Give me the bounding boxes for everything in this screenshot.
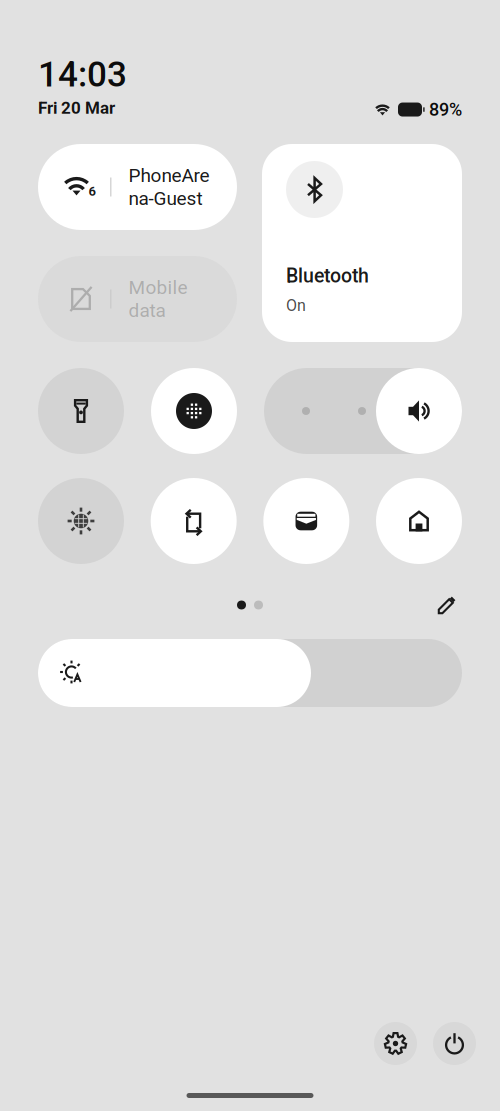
staticText: 89% <box>429 99 462 120</box>
staticText: 6 <box>88 184 95 199</box>
staticText: na-Guest <box>128 187 202 210</box>
button[interactable]: Eye comfort shield <box>38 478 124 564</box>
staticText: Bluetooth <box>286 264 369 287</box>
button[interactable]: Bluetooth <box>262 144 462 342</box>
button[interactable]: Mobile <box>38 256 237 342</box>
button[interactable]: Settings <box>374 1022 417 1065</box>
button[interactable]: 6 <box>38 144 237 230</box>
button[interactable]: Flashlight <box>38 368 124 454</box>
staticText: Fri 20 Mar <box>38 98 115 118</box>
button[interactable]: Sound mode <box>151 368 237 454</box>
button[interactable]: Brightness <box>38 639 462 707</box>
button[interactable]: Edit <box>434 592 460 618</box>
button[interactable]: Volume <box>264 368 462 454</box>
staticText: Mobile <box>128 276 187 299</box>
staticText: PhoneAre <box>128 164 209 187</box>
staticText: data <box>128 299 165 322</box>
button[interactable]: SmartThings <box>376 478 462 564</box>
staticText: 14:03 <box>38 54 127 95</box>
staticText: On <box>286 296 306 315</box>
button[interactable]: Wallet <box>263 478 349 564</box>
button[interactable]: Auto rotate <box>151 478 237 564</box>
button[interactable]: Power <box>433 1022 476 1065</box>
